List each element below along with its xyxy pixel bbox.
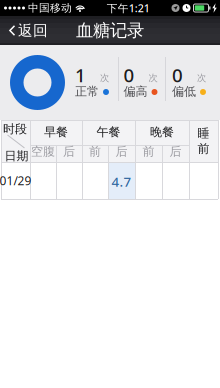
staticText: 1	[75, 63, 86, 87]
staticText: 正常	[75, 84, 99, 99]
staticText: 返回	[18, 21, 48, 39]
staticText: 日期	[4, 149, 28, 163]
staticText: 后	[63, 144, 75, 159]
staticText: 后	[115, 144, 127, 159]
staticText: 偏高	[123, 84, 147, 99]
staticText: 午餐	[96, 125, 120, 139]
staticText: 0	[172, 63, 183, 87]
staticText: 次	[100, 72, 109, 84]
staticText: 早餐	[44, 125, 68, 139]
staticText: 后	[169, 144, 181, 159]
staticText: 中国移动	[25, 1, 75, 14]
staticText: 0	[123, 63, 134, 87]
staticText: 时段	[3, 122, 27, 136]
staticText: 01/29	[0, 172, 31, 188]
staticText: 次	[197, 72, 206, 84]
staticText: 前	[197, 141, 209, 156]
staticText: 前	[142, 144, 154, 159]
staticText: 下午1:21	[107, 1, 150, 15]
staticText: 4.7	[111, 173, 131, 190]
staticText: 血糖记录	[76, 20, 144, 41]
staticText: 次	[148, 72, 157, 84]
staticText: 空腹	[31, 144, 55, 159]
staticText: 偏低	[172, 84, 196, 99]
staticText: 晚餐	[150, 125, 174, 139]
staticText: 前	[89, 144, 101, 159]
button[interactable]: 返回	[0, 16, 56, 45]
staticText: 睡	[197, 126, 209, 140]
